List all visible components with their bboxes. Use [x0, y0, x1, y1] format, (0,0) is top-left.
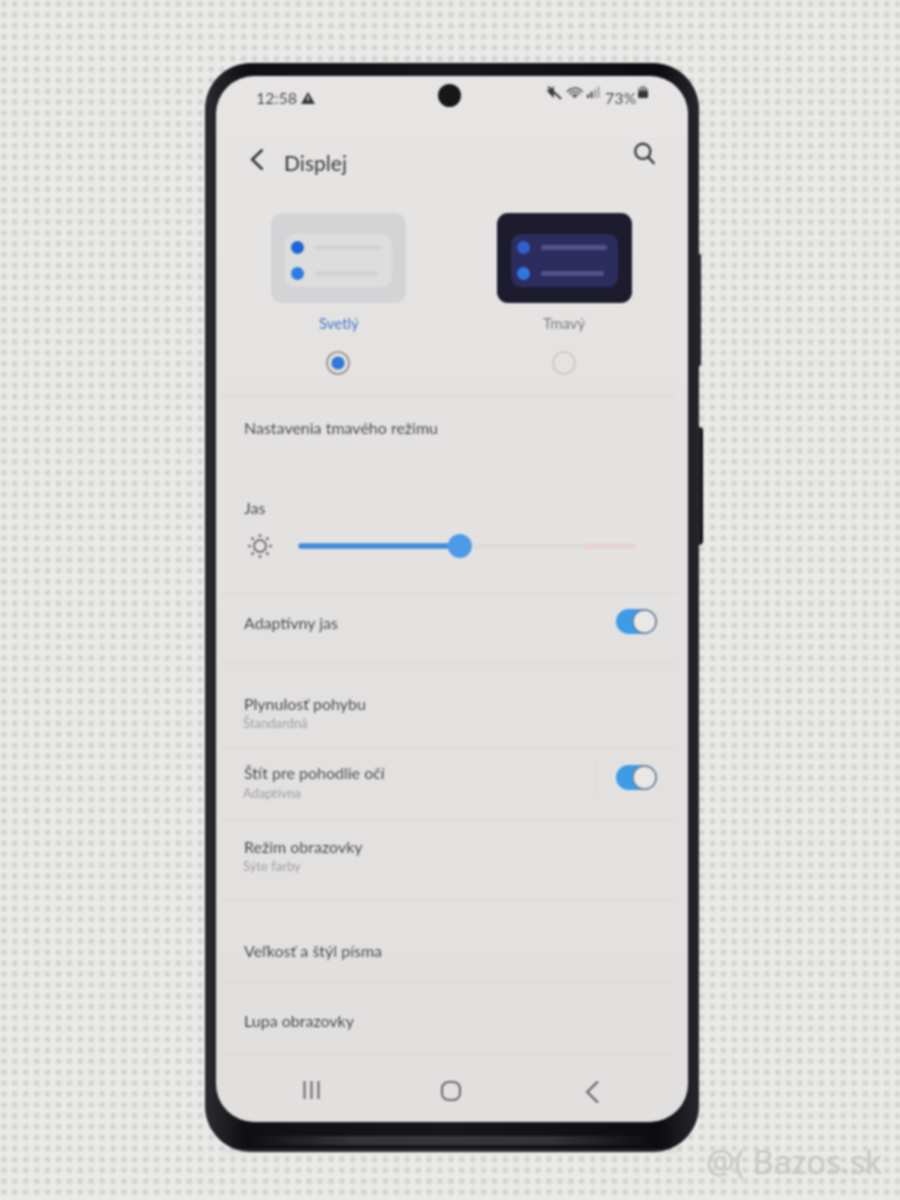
button[interactable]: Back	[577, 1077, 607, 1107]
staticText: Jas	[244, 498, 266, 517]
staticText: Plynulosť pohybu	[244, 694, 366, 713]
button[interactable]: Recents	[296, 1075, 326, 1105]
button[interactable]: Veľkosť a štýl písma	[216, 931, 688, 969]
staticText: 73%	[605, 88, 637, 107]
button[interactable]: Režim obrazovky	[216, 827, 688, 865]
button[interactable]: Tmavý	[550, 349, 578, 377]
staticText: 12:58	[256, 88, 298, 107]
button[interactable]: Back	[234, 136, 280, 182]
button[interactable]: Nastavenia tmavého režimu	[216, 408, 688, 446]
button[interactable]: Tmavý	[497, 314, 632, 332]
staticText: Sýte farby	[243, 858, 301, 874]
staticText: Nastavenia tmavého režimu	[244, 418, 439, 437]
button[interactable]: Štít pre pohodlie očí	[216, 753, 688, 791]
staticText: Adaptívna	[243, 785, 302, 801]
staticText: Režim obrazovky	[244, 837, 363, 856]
button[interactable]: Jas	[216, 488, 688, 526]
staticText: Lupa obrazovky	[244, 1011, 354, 1030]
button[interactable]: Search	[622, 131, 668, 177]
staticText: Displej	[284, 150, 348, 175]
button[interactable]: Adaptívny jas	[216, 603, 688, 641]
staticText: Veľkosť a štýl písma	[244, 941, 383, 960]
staticText: Adaptívny jas	[244, 613, 338, 632]
button[interactable]: Svetlý	[271, 314, 406, 332]
button[interactable]: Toggle	[613, 761, 661, 793]
button[interactable]: Lupa obrazovky	[216, 1001, 688, 1039]
staticText: Tmavý	[543, 314, 586, 332]
button[interactable]: Plynulosť pohybu	[216, 684, 688, 722]
button[interactable]: Toggle	[613, 605, 661, 637]
staticText: Štandardná	[243, 715, 308, 731]
button[interactable]: Home	[436, 1076, 466, 1106]
staticText: Svetlý	[319, 314, 359, 332]
button[interactable]: Svetlý	[324, 349, 352, 377]
staticText: Štít pre pohodlie očí	[244, 763, 385, 782]
button[interactable]	[497, 213, 632, 303]
staticText: @( Bazos.sk	[706, 1140, 883, 1184]
button[interactable]	[271, 213, 406, 303]
button[interactable]: Brightness	[290, 533, 645, 559]
